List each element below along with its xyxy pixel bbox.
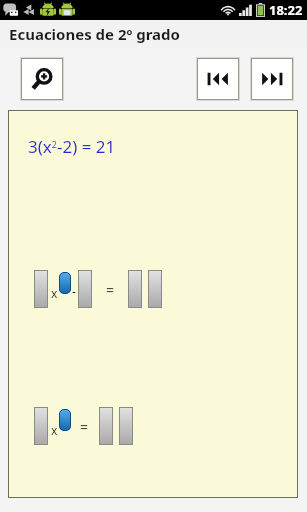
button[interactable]: Unit tile (34, 270, 48, 308)
staticText: - (72, 283, 76, 299)
staticText: = (80, 417, 89, 436)
button[interactable]: Zoom in (21, 58, 63, 100)
staticText: Ecuaciones de 2º grado (9, 24, 180, 44)
staticText: = (106, 280, 115, 299)
button[interactable]: Unit tile (34, 407, 48, 445)
staticText: 18:22 (269, 1, 303, 19)
button[interactable]: Unit tile (119, 407, 133, 445)
button[interactable]: Unit tile (148, 270, 162, 308)
button[interactable]: Previous (197, 58, 239, 100)
staticText: x (51, 422, 58, 438)
staticText: x (51, 285, 58, 301)
staticText: 3(x2-2) = 21 (28, 135, 116, 158)
button[interactable]: Unit tile (78, 270, 92, 308)
button[interactable]: Variable tile (59, 409, 71, 431)
button[interactable]: Next (251, 58, 293, 100)
button[interactable]: Unit tile (128, 270, 142, 308)
button[interactable]: Unit tile (99, 407, 113, 445)
button[interactable]: Variable tile (59, 272, 71, 294)
